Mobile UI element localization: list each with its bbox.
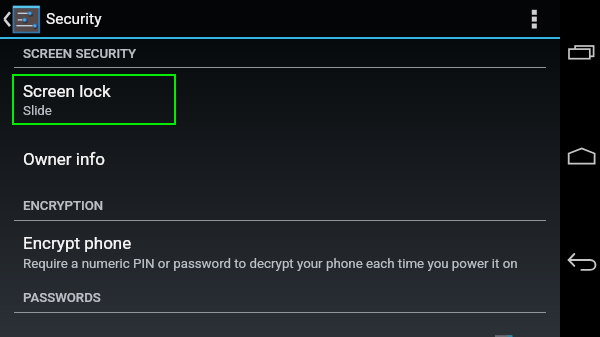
button[interactable]: More options (520, 0, 548, 37)
staticText: Encrypt phone (23, 233, 132, 253)
staticText: Owner info (23, 149, 105, 169)
button[interactable]: Home (564, 138, 600, 174)
staticText: ENCRYPTION (23, 198, 104, 213)
button[interactable]: Settings (12, 5, 41, 34)
button[interactable]: Screen lock (12, 74, 176, 125)
staticText: Security (46, 10, 102, 28)
staticText: PASSWORDS (23, 290, 101, 305)
button[interactable]: Back (564, 236, 600, 272)
button[interactable]: Navigate up (0, 0, 12, 37)
button[interactable]: Owner info (0, 136, 560, 180)
button[interactable]: Recent apps (564, 34, 600, 70)
staticText: Slide (23, 103, 52, 119)
button[interactable]: Encrypt phone (0, 228, 560, 280)
staticText: SCREEN SECURITY (23, 46, 137, 61)
staticText: Screen lock (23, 81, 111, 101)
button[interactable] (0, 320, 560, 337)
staticText: Require a numeric PIN or password to dec… (23, 256, 548, 272)
